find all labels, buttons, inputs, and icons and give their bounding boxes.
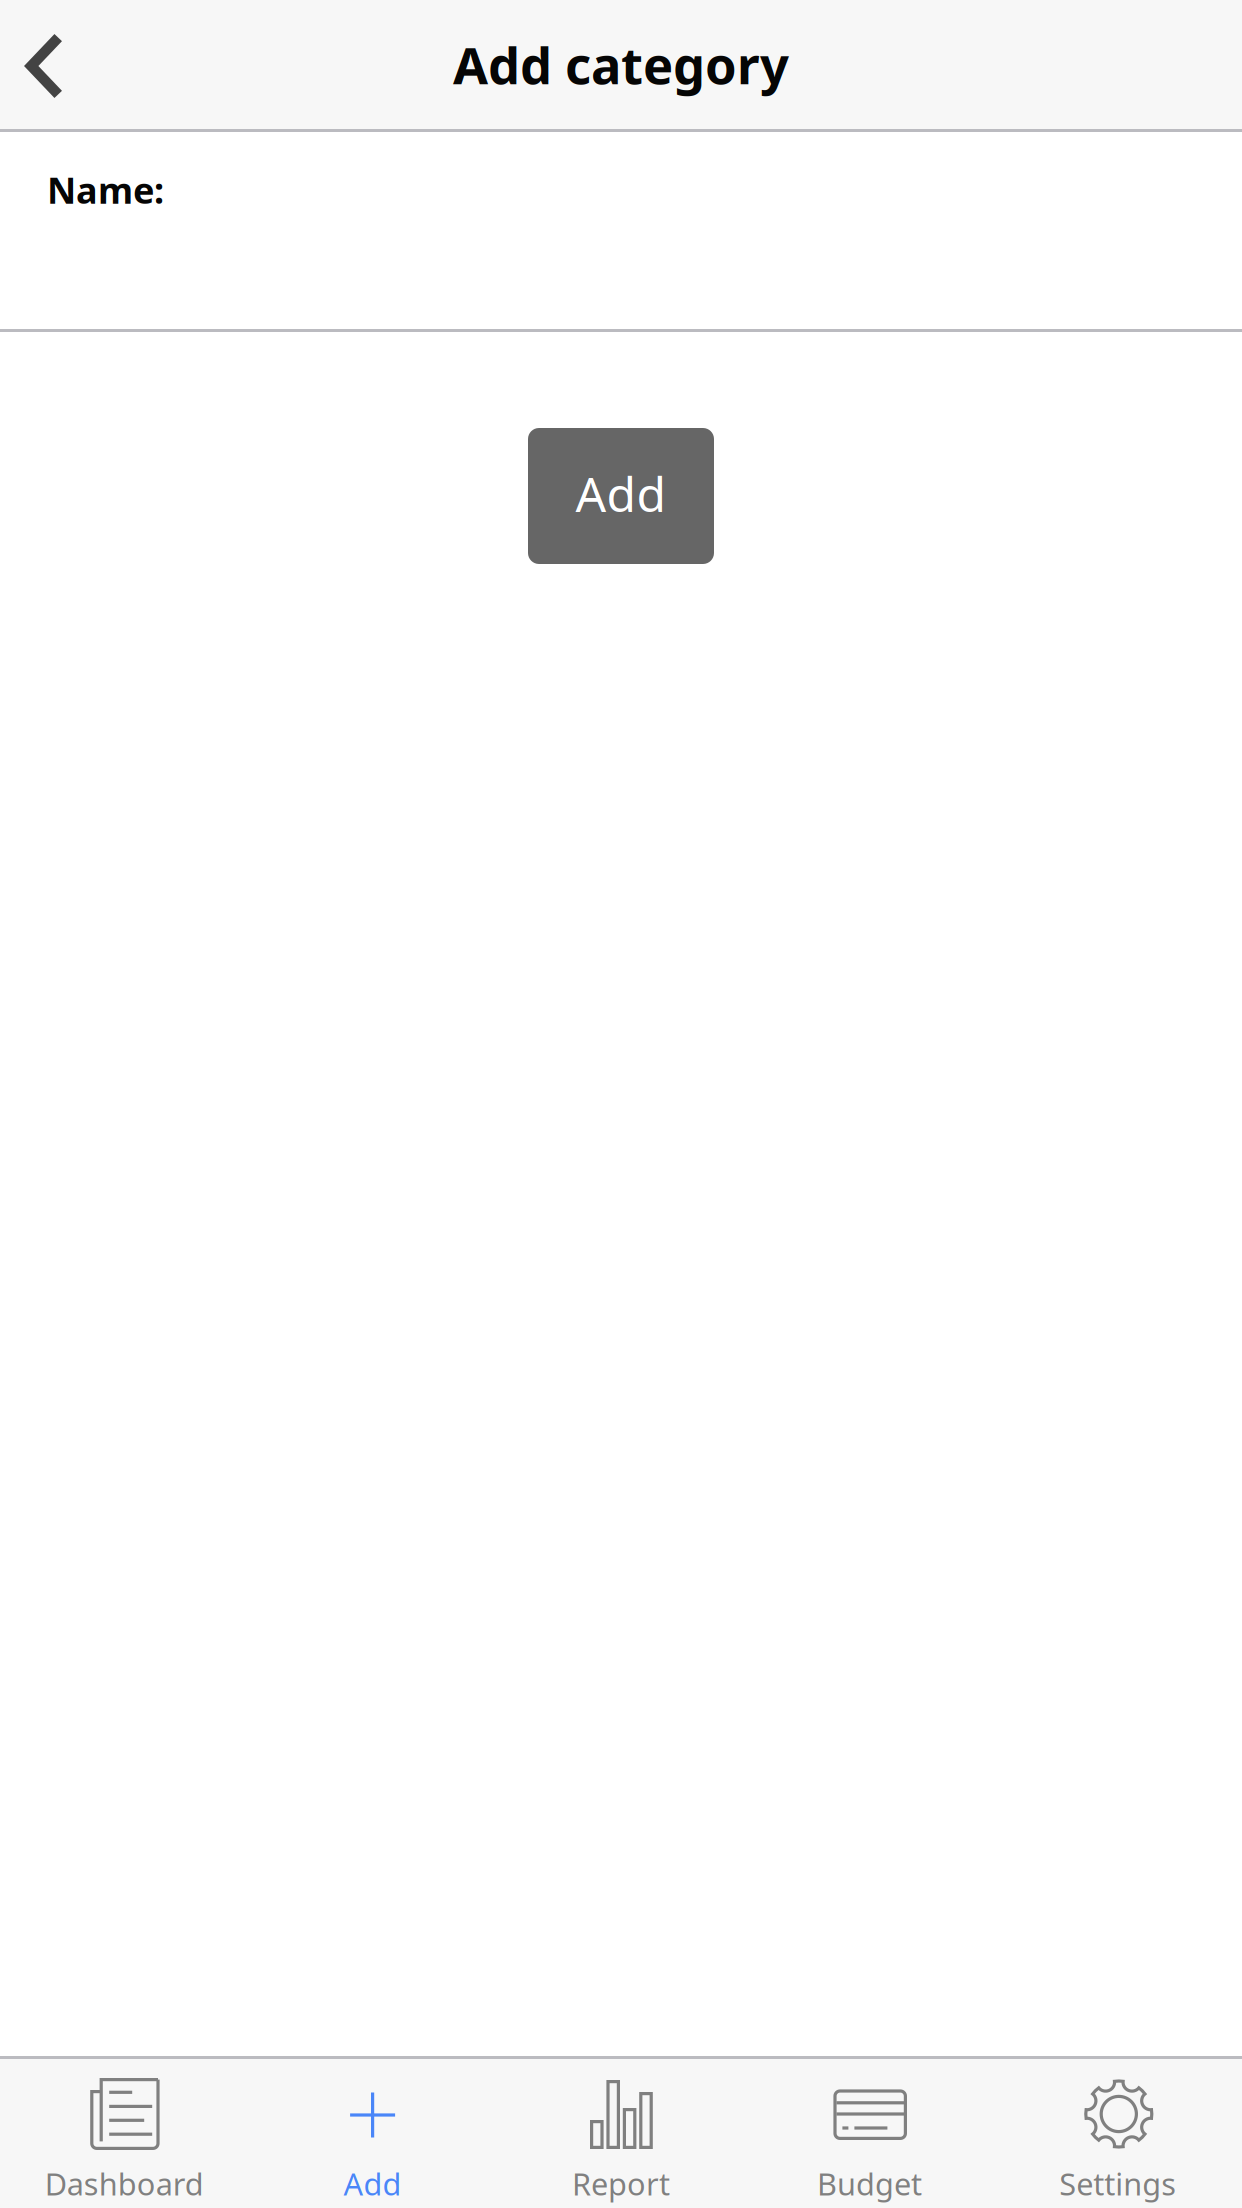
staticText: Dashboard [45, 2163, 204, 2204]
button[interactable]: Dashboard [0, 2059, 248, 2208]
button[interactable]: Back [0, 0, 110, 129]
button[interactable]: Add [528, 428, 714, 564]
staticText: Report [572, 2163, 670, 2204]
button[interactable]: Budget [745, 2059, 994, 2208]
staticText: Add category [453, 31, 789, 98]
button[interactable]: Add [248, 2059, 497, 2208]
staticText: Add [344, 2163, 402, 2204]
staticText: Add [575, 462, 666, 525]
staticText: Budget [817, 2163, 922, 2204]
staticText: Settings [1059, 2163, 1176, 2204]
button[interactable]: Report [497, 2059, 745, 2208]
button[interactable]: Settings [994, 2059, 1242, 2208]
staticText: Name: [47, 166, 164, 214]
button[interactable]: Name: [0, 132, 1242, 329]
